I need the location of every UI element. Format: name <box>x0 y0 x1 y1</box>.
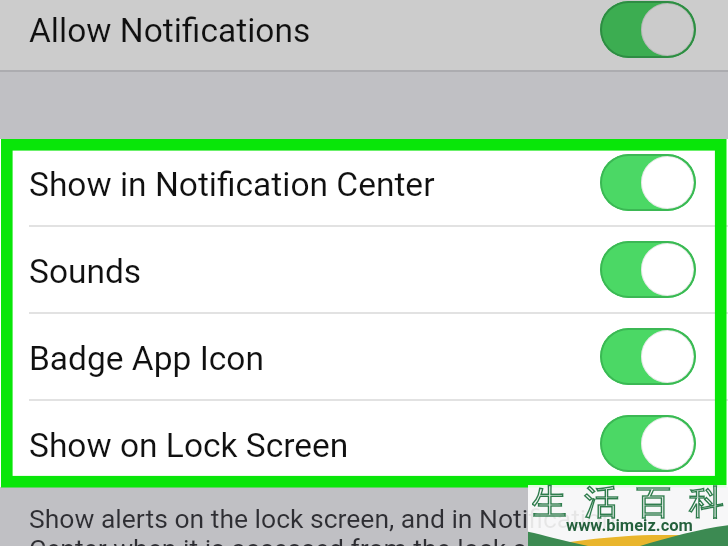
button[interactable]: Allow Notifications toggle <box>600 1 696 58</box>
button[interactable]: Badge App Icon <box>0 313 728 400</box>
staticText: Show alerts on the lock screen, and in N… <box>29 503 724 546</box>
button[interactable]: Show on Lock Screen <box>0 400 728 487</box>
staticText: www.bimeiz.com <box>566 516 693 535</box>
button[interactable]: Sounds toggle <box>600 241 696 298</box>
staticText: Sounds <box>29 252 142 291</box>
button[interactable]: Show on Lock Screen toggle <box>600 415 696 472</box>
button[interactable]: Badge App Icon toggle <box>600 328 696 385</box>
staticText: Show on Lock Screen <box>29 426 349 465</box>
staticText: 生活百科 <box>532 481 728 524</box>
staticText: Badge App Icon <box>29 339 264 378</box>
staticText: Allow Notifications <box>29 11 311 50</box>
button[interactable]: Sounds <box>0 226 728 313</box>
staticText: Show in Notification Center <box>29 165 435 204</box>
button[interactable]: Show in Notification Center toggle <box>600 154 696 211</box>
button[interactable]: Show in Notification Center <box>0 139 728 226</box>
button[interactable]: Allow Notifications <box>0 0 728 70</box>
